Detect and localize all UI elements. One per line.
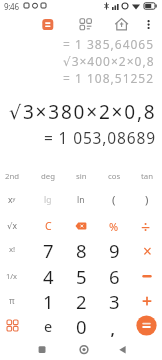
button[interactable] bbox=[130, 314, 162, 337]
button[interactable]: ) bbox=[131, 188, 162, 211]
staticText: 5 bbox=[76, 264, 87, 287]
staticText: 4 bbox=[43, 264, 54, 287]
button[interactable]: 2nd bbox=[0, 165, 28, 188]
button[interactable]: tan bbox=[131, 165, 162, 188]
staticText: = 1 053,08689 bbox=[44, 127, 156, 148]
button[interactable] bbox=[142, 17, 156, 32]
staticText: xʸ bbox=[8, 194, 16, 206]
staticText: = 1 385,64065 bbox=[63, 36, 155, 52]
button[interactable]: C bbox=[32, 214, 64, 237]
button[interactable] bbox=[131, 289, 162, 312]
button[interactable] bbox=[0, 314, 28, 337]
button[interactable]: 1/x bbox=[0, 264, 28, 287]
staticText: cos bbox=[108, 171, 121, 182]
button[interactable]: x! bbox=[0, 238, 28, 261]
staticText: π bbox=[9, 295, 15, 307]
staticText: 3 bbox=[109, 289, 120, 312]
button[interactable]: ( bbox=[98, 188, 130, 211]
staticText: 8 bbox=[76, 238, 87, 261]
button[interactable]: 0 bbox=[65, 314, 97, 337]
staticText: √3×400×2×0,8 bbox=[63, 53, 155, 69]
staticText: x! bbox=[9, 244, 16, 255]
button[interactable]: 4 bbox=[32, 264, 64, 287]
button[interactable]: deg bbox=[32, 165, 64, 188]
button[interactable]: ÷ bbox=[130, 215, 162, 238]
staticText: lg bbox=[44, 194, 52, 206]
button[interactable] bbox=[65, 215, 97, 238]
button[interactable] bbox=[114, 17, 130, 32]
button[interactable]: 1 bbox=[32, 289, 64, 312]
staticText: deg bbox=[41, 171, 55, 182]
staticText: 1/x bbox=[6, 271, 18, 281]
staticText: ln bbox=[77, 194, 85, 206]
staticText: , bbox=[110, 314, 116, 337]
button[interactable]: e bbox=[32, 314, 64, 337]
button[interactable]: lg bbox=[32, 188, 64, 211]
button[interactable]: 9 bbox=[98, 238, 130, 261]
staticText: × bbox=[143, 240, 152, 261]
staticText: ) bbox=[145, 192, 149, 208]
staticText: 0 bbox=[76, 314, 87, 337]
button[interactable]: π bbox=[0, 289, 28, 312]
button[interactable]: 8 bbox=[65, 238, 97, 261]
staticText: 9 bbox=[109, 238, 120, 261]
staticText: 7 bbox=[43, 238, 54, 261]
staticText: 6 bbox=[109, 264, 120, 287]
button[interactable]: × bbox=[131, 239, 162, 262]
staticText: 9:46 bbox=[4, 1, 19, 12]
button[interactable]: ln bbox=[65, 188, 97, 211]
button[interactable]: xʸ bbox=[0, 188, 28, 211]
staticText: 2nd bbox=[5, 171, 20, 182]
button[interactable]: √x bbox=[0, 214, 28, 237]
staticText: C bbox=[45, 219, 52, 233]
button[interactable]: , bbox=[97, 314, 129, 337]
staticText: e bbox=[44, 316, 53, 336]
button[interactable]: 3 bbox=[98, 289, 130, 312]
staticText: ( bbox=[112, 192, 116, 208]
button[interactable] bbox=[30, 340, 54, 360]
staticText: sin bbox=[76, 171, 87, 182]
button[interactable] bbox=[111, 340, 135, 360]
button[interactable]: sin bbox=[65, 165, 97, 188]
button[interactable]: 5 bbox=[65, 264, 97, 287]
button[interactable]: % bbox=[98, 215, 130, 238]
button[interactable] bbox=[71, 340, 95, 360]
staticText: = 1 108,51252 bbox=[63, 70, 155, 86]
button[interactable]: 2 bbox=[65, 289, 97, 312]
button[interactable] bbox=[41, 18, 55, 32]
staticText: √3×380×2×0,8 bbox=[9, 99, 157, 125]
button[interactable]: 7 bbox=[32, 238, 64, 261]
staticText: 1 bbox=[43, 289, 54, 312]
button[interactable] bbox=[131, 264, 162, 287]
staticText: √x bbox=[7, 220, 17, 232]
button[interactable] bbox=[79, 17, 93, 31]
button[interactable]: cos bbox=[98, 165, 130, 188]
staticText: 2 bbox=[76, 289, 87, 312]
staticText: tan bbox=[141, 171, 154, 182]
staticText: % bbox=[109, 219, 119, 234]
staticText: ÷ bbox=[141, 216, 151, 238]
button[interactable]: 6 bbox=[98, 264, 130, 287]
